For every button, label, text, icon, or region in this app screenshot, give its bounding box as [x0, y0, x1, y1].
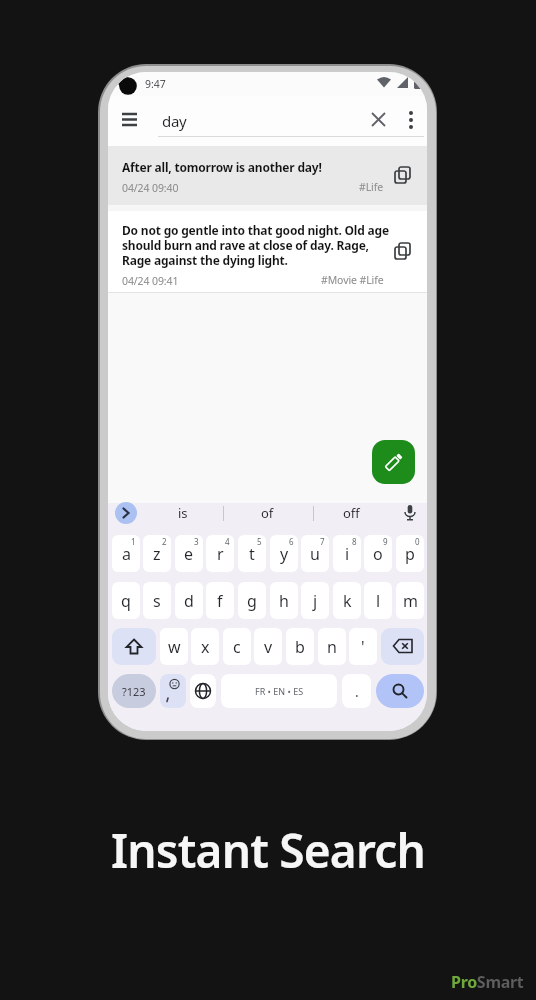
button[interactable]: . — [342, 674, 371, 708]
staticText: r — [217, 543, 224, 565]
button[interactable]: off — [321, 503, 381, 523]
staticText: is — [178, 504, 188, 522]
button[interactable]: y — [270, 535, 298, 572]
button[interactable] — [160, 674, 186, 708]
button[interactable]: c — [223, 628, 251, 665]
staticText: 3 — [194, 536, 199, 547]
staticText: of — [261, 504, 274, 522]
staticText: p — [405, 543, 415, 565]
button[interactable] — [190, 674, 216, 708]
button[interactable]: d — [175, 582, 203, 619]
staticText: h — [279, 590, 289, 612]
button[interactable]: u — [301, 535, 329, 572]
staticText: y — [280, 543, 289, 565]
staticText: l — [376, 590, 381, 612]
button[interactable]: b — [286, 628, 314, 665]
staticText: . — [355, 682, 359, 701]
staticText: 9:47 — [145, 77, 166, 91]
staticText: g — [247, 590, 257, 612]
staticText: b — [295, 636, 305, 658]
button[interactable] — [112, 628, 156, 665]
staticText: d — [184, 590, 194, 612]
staticText: t — [249, 543, 255, 565]
button[interactable]: k — [333, 582, 361, 619]
staticText: x — [201, 636, 210, 658]
staticText: 7 — [320, 536, 325, 547]
staticText: FR • EN • ES — [255, 685, 304, 697]
staticText: #Life — [359, 180, 384, 194]
button[interactable]: is — [153, 503, 213, 523]
staticText: day — [162, 111, 187, 131]
staticText: #Movie #Life — [321, 273, 384, 287]
button[interactable]: ProSmart — [451, 971, 524, 993]
staticText: o — [373, 543, 383, 565]
staticText: z — [153, 543, 161, 565]
staticText: a — [122, 543, 131, 565]
staticText: 1 — [131, 536, 136, 547]
staticText: ProSmart — [451, 971, 524, 993]
staticText: Instant Search — [111, 819, 426, 882]
button[interactable]: f — [206, 582, 234, 619]
button[interactable]: s — [143, 582, 171, 619]
button[interactable]: e — [175, 535, 203, 572]
button[interactable]: q — [112, 582, 140, 619]
button[interactable] — [381, 628, 424, 665]
staticText: 0 — [415, 536, 420, 547]
button[interactable]: r — [206, 535, 234, 572]
staticText: ' — [361, 636, 365, 658]
button[interactable] — [115, 502, 137, 524]
staticText: w — [168, 636, 181, 658]
button[interactable]: ' — [349, 628, 377, 665]
staticText: After all, tomorrow is another day! — [122, 159, 322, 175]
button[interactable]: g — [238, 582, 266, 619]
button[interactable]: p — [396, 535, 424, 572]
button[interactable]: x — [191, 628, 219, 665]
button[interactable]: t — [238, 535, 266, 572]
button[interactable]: l — [364, 582, 392, 619]
staticText: ?123 — [122, 684, 146, 699]
button[interactable]: ?123 — [112, 674, 156, 708]
button[interactable] — [376, 674, 424, 708]
staticText: Do not go gentle into that good night. O… — [122, 222, 389, 268]
button[interactable]: h — [270, 582, 298, 619]
staticText: 04/24 09:40 — [122, 181, 179, 195]
button[interactable]: w — [160, 628, 188, 665]
button[interactable] — [398, 501, 422, 525]
button[interactable]: n — [318, 628, 346, 665]
staticText: 6 — [289, 536, 294, 547]
staticText: m — [403, 590, 418, 612]
staticText: off — [343, 504, 360, 522]
button[interactable]: m — [396, 582, 424, 619]
button[interactable]: j — [301, 582, 329, 619]
button[interactable]: day — [154, 100, 364, 140]
staticText: 04/24 09:41 — [122, 274, 179, 288]
staticText: 9 — [383, 536, 388, 547]
staticText: 8 — [352, 536, 357, 547]
staticText: v — [264, 636, 273, 658]
button[interactable] — [368, 109, 389, 130]
button[interactable] — [393, 166, 413, 186]
staticText: q — [121, 590, 131, 612]
button[interactable]: v — [254, 628, 282, 665]
button[interactable]: z — [143, 535, 171, 572]
staticText: 5 — [257, 536, 262, 547]
staticText: n — [327, 636, 337, 658]
button[interactable]: a — [112, 535, 140, 572]
button[interactable]: o — [364, 535, 392, 572]
staticText: u — [310, 543, 320, 565]
button[interactable] — [372, 440, 415, 484]
staticText: 4 — [225, 536, 230, 547]
staticText: f — [217, 590, 223, 612]
button[interactable] — [393, 242, 413, 262]
button[interactable] — [402, 106, 420, 134]
button[interactable]: FR • EN • ES — [221, 674, 337, 708]
button[interactable]: i — [333, 535, 361, 572]
staticText: s — [153, 590, 161, 612]
staticText: k — [343, 590, 352, 612]
staticText: 2 — [162, 536, 167, 547]
button[interactable]: Do not go gentle into that good night. O… — [108, 211, 427, 293]
staticText: i — [345, 543, 350, 565]
button[interactable] — [116, 108, 144, 132]
button[interactable]: After all, tomorrow is another day! — [108, 146, 427, 205]
button[interactable]: of — [237, 503, 297, 523]
